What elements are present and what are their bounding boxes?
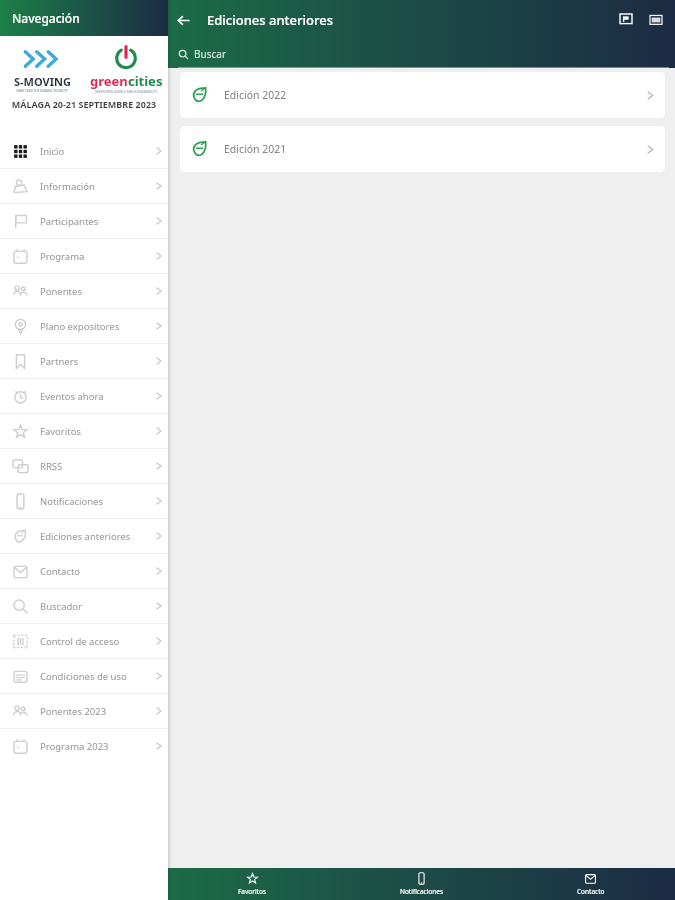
button[interactable]: Ponentes — [0, 274, 168, 308]
button[interactable]: Contacto — [0, 554, 168, 588]
staticText: Notificaciones — [400, 887, 444, 896]
staticText: cities — [128, 72, 163, 90]
button[interactable]: Buscador — [0, 589, 168, 623]
staticText: Programa — [40, 250, 150, 263]
staticText: Ediciones anteriores — [207, 11, 333, 29]
button[interactable]: Condiciones de uso — [0, 659, 168, 693]
staticText: Edición 2022 — [224, 88, 646, 102]
staticText: Buscar — [194, 47, 227, 61]
button[interactable]: Back — [170, 7, 196, 33]
staticText: green — [90, 72, 128, 90]
staticText: Favoritos — [238, 887, 267, 896]
staticText: Participantes — [40, 215, 150, 228]
staticText: Partners — [40, 355, 150, 368]
staticText: Edición 2021 — [224, 142, 646, 156]
button[interactable]: Información — [0, 169, 168, 203]
button[interactable]: Notificaciones — [337, 868, 506, 900]
staticText: Contacto — [40, 565, 150, 578]
button[interactable]: Eventos ahora — [0, 379, 168, 413]
button[interactable]: Participantes — [0, 204, 168, 238]
button[interactable]: RRSS — [0, 449, 168, 483]
button[interactable]: Edición 2021 — [180, 126, 665, 172]
button[interactable]: Programa — [0, 239, 168, 273]
button[interactable]: Plano expositores — [0, 309, 168, 343]
staticText: RRSS — [40, 460, 150, 473]
staticText: Ponentes — [40, 285, 150, 298]
button[interactable]: Inicio — [0, 134, 168, 168]
staticText: Eventos ahora — [40, 390, 150, 403]
staticText: S-MOVING — [14, 74, 71, 89]
button[interactable]: Favoritos — [168, 868, 337, 900]
button[interactable]: Partners — [0, 344, 168, 378]
button[interactable]: Programa 2023 — [0, 729, 168, 763]
staticText: Favoritos — [40, 425, 150, 438]
staticText: Ponentes 2023 — [40, 705, 150, 718]
staticText: MÁLAGA 20-21 SEPTIEMBRE 2023 — [0, 98, 168, 110]
button[interactable]: Ponentes 2023 — [0, 694, 168, 728]
staticText: Condiciones de uso — [40, 670, 150, 683]
button[interactable]: Ediciones anteriores — [0, 519, 168, 553]
staticText: Navegación — [12, 10, 80, 26]
staticText: GREEN INTELLIGENCE AND SUSTAINABILITY — [95, 90, 157, 94]
button[interactable]: Control de acceso — [0, 624, 168, 658]
staticText: Contacto — [577, 887, 605, 896]
staticText: Plano expositores — [40, 320, 150, 333]
staticText: SMART AND SUSTAINABLE MOBILITY — [16, 89, 68, 93]
staticText: Inicio — [40, 145, 150, 158]
staticText: Notificaciones — [40, 495, 150, 508]
staticText: Control de acceso — [40, 635, 150, 648]
button[interactable]: Chat — [613, 7, 639, 33]
staticText: Buscador — [40, 600, 150, 613]
button[interactable]: Edición 2022 — [180, 72, 665, 118]
staticText: Ediciones anteriores — [40, 530, 150, 543]
button[interactable]: Favoritos — [0, 414, 168, 448]
button[interactable]: Menu — [643, 7, 669, 33]
staticText: Programa 2023 — [40, 740, 150, 753]
staticText: Información — [40, 180, 150, 193]
button[interactable]: Contacto — [506, 868, 675, 900]
button[interactable]: Notificaciones — [0, 484, 168, 518]
